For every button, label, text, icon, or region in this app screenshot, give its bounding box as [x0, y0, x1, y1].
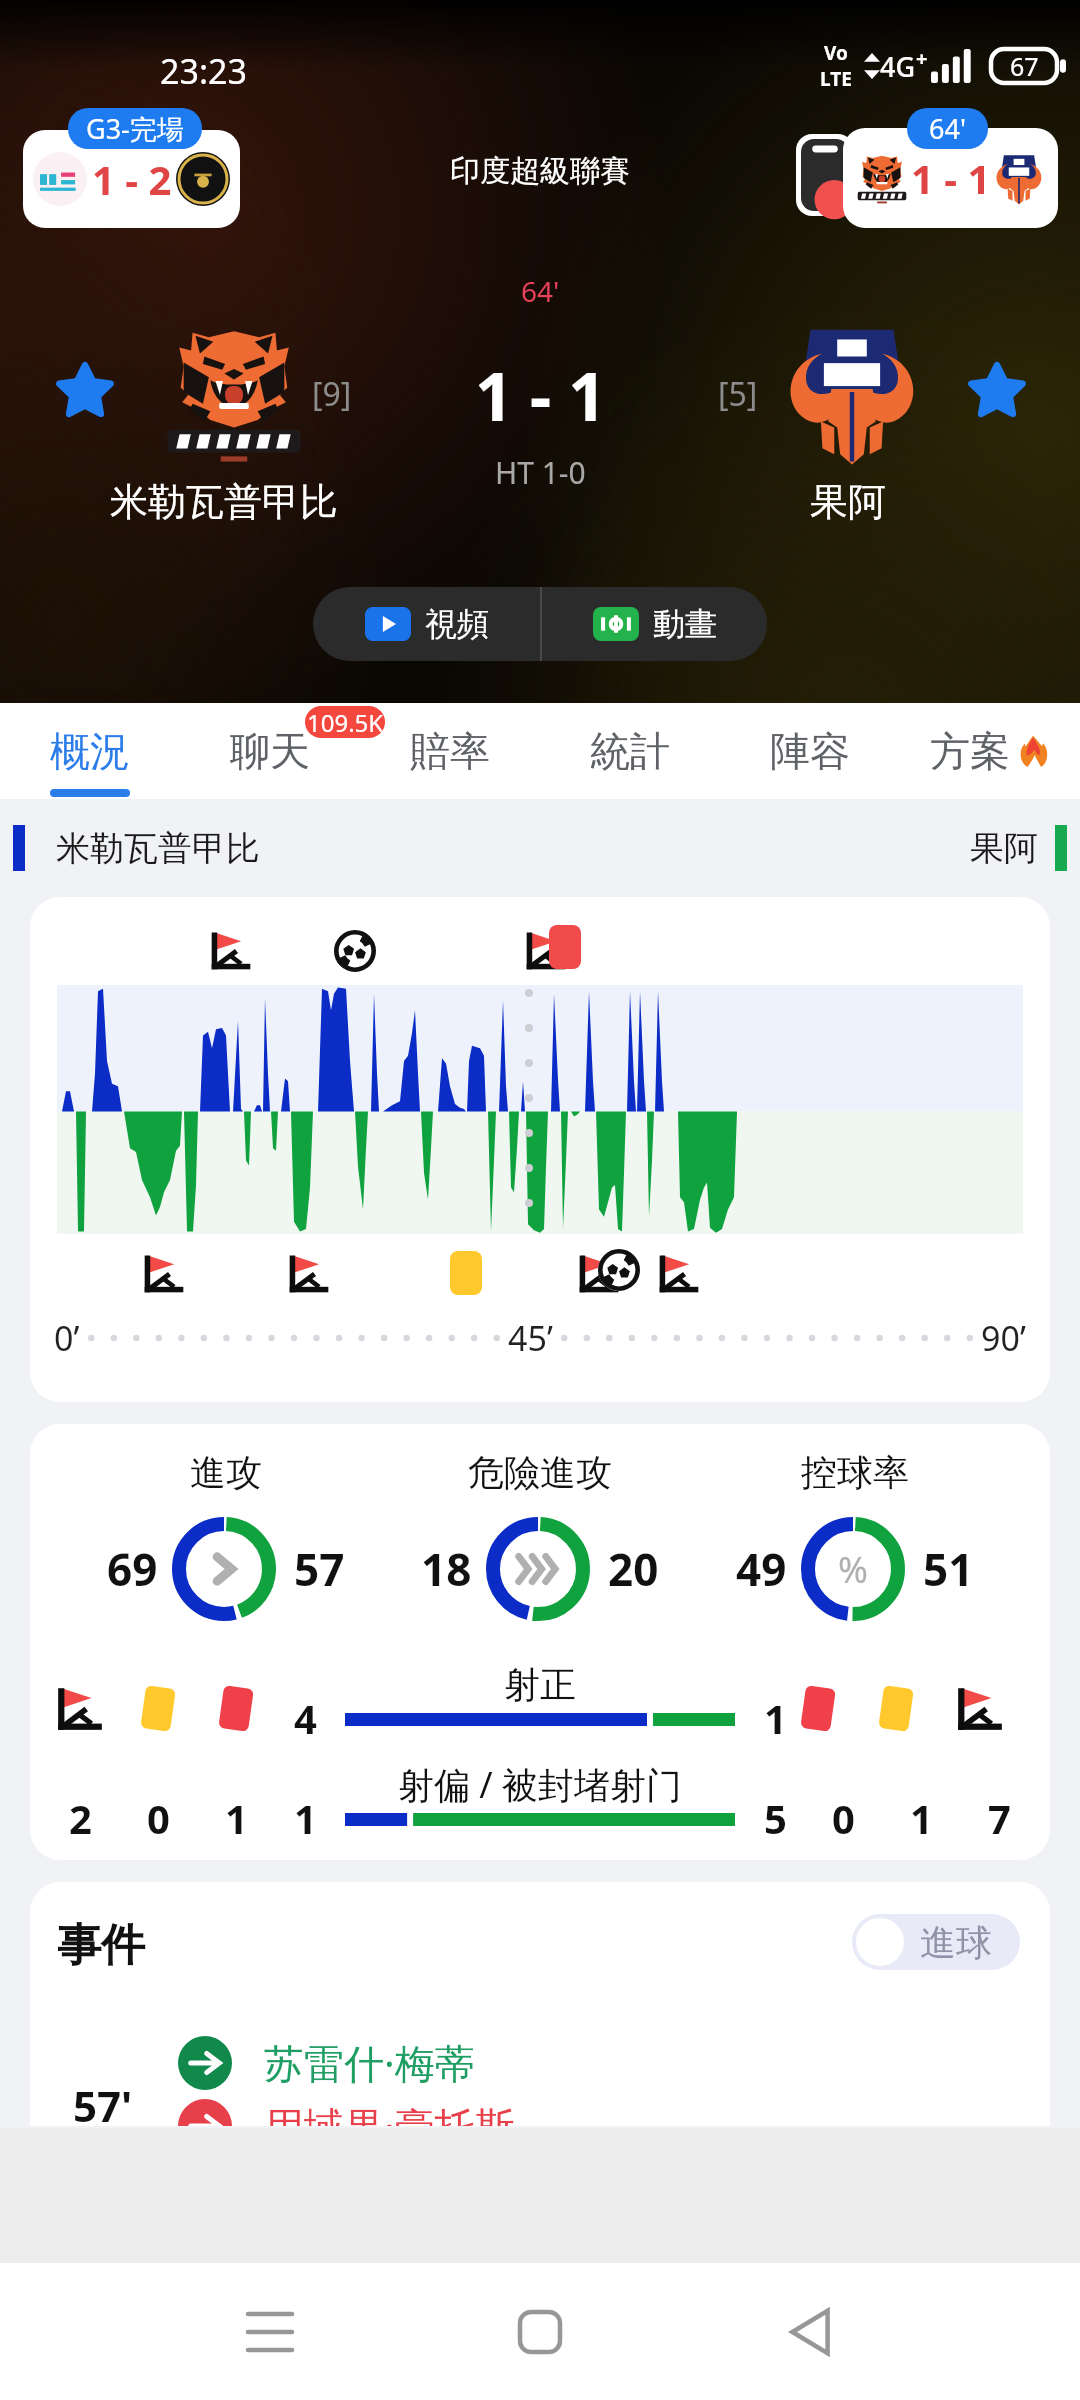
button[interactable]: Home — [450, 2263, 630, 2400]
button[interactable]: 進球 — [856, 1918, 1016, 1966]
staticText: 64' — [521, 272, 560, 310]
staticText: 苏雷什·梅蒂 — [264, 2035, 475, 2090]
staticText: 1 — [764, 1691, 787, 1745]
staticText: 51 — [923, 1539, 974, 1599]
staticText: 射正 — [504, 1662, 576, 1707]
button[interactable]: 動畫 — [542, 587, 767, 661]
staticText: 69 — [107, 1539, 158, 1599]
staticText: 1 - 1 — [475, 350, 606, 440]
button[interactable]: 概況 — [0, 703, 180, 799]
staticText: 90’ — [981, 1315, 1026, 1361]
staticText: 1 — [910, 1791, 933, 1845]
staticText: 危險進攻 — [468, 1450, 612, 1495]
staticText: 7 — [988, 1791, 1011, 1845]
button[interactable]: 聊天 — [180, 703, 360, 799]
staticText: 49 — [736, 1539, 787, 1599]
staticText: 1 — [294, 1791, 317, 1845]
staticText: 57' — [73, 2077, 133, 2126]
button[interactable]: 陣容 — [720, 703, 900, 799]
button[interactable]: Favourite home team — [58, 364, 112, 418]
staticText: 1 — [225, 1791, 248, 1845]
staticText: 用域果·豪托斯 — [264, 2098, 515, 2126]
staticText: 64' — [929, 110, 966, 147]
staticText: G3-完場 — [86, 110, 184, 147]
staticText: 賠率 — [410, 726, 490, 776]
staticText: 1 - 2 — [92, 152, 172, 206]
staticText: 米勒瓦普甲比 — [110, 478, 338, 526]
staticText: 1 - 1 — [911, 151, 991, 205]
staticText: 進球 — [920, 1920, 992, 1965]
button[interactable]: 1 - 1 — [843, 128, 1058, 228]
button[interactable]: 1 - 2 — [23, 108, 240, 228]
staticText: 57 — [294, 1539, 345, 1599]
staticText: [5] — [718, 372, 758, 416]
button[interactable]: Back — [720, 2263, 900, 2400]
staticText: 4G — [880, 48, 916, 85]
staticText: 印度超級聯賽 — [450, 152, 630, 190]
staticText: 概況 — [50, 726, 130, 776]
staticText: 視頻 — [425, 604, 489, 644]
staticText: 4 — [294, 1691, 317, 1745]
button[interactable]: 方案 — [900, 703, 1080, 799]
button[interactable]: 視頻 — [313, 587, 540, 661]
staticText: 45’ — [508, 1315, 553, 1361]
button[interactable]: 賠率 — [360, 703, 540, 799]
staticText: 聊天 — [230, 726, 310, 776]
staticText: 20 — [608, 1539, 659, 1599]
staticText: 5 — [764, 1791, 787, 1845]
staticText: 陣容 — [770, 726, 850, 776]
staticText: + — [916, 45, 928, 72]
staticText: 動畫 — [653, 604, 717, 644]
staticText: 控球率 — [801, 1450, 909, 1495]
staticText: 射偏 / 被封堵射门 — [398, 1760, 683, 1809]
staticText: LTE — [820, 66, 852, 92]
staticText: 統計 — [590, 726, 670, 776]
staticText: Vo — [824, 40, 848, 66]
button[interactable]: 0’ — [30, 897, 1050, 1402]
staticText: 2 — [69, 1791, 92, 1845]
staticText: 0 — [832, 1791, 855, 1845]
staticText: 米勒瓦普甲比 — [56, 827, 260, 870]
staticText: 果阿 — [810, 478, 886, 526]
staticText: 0’ — [54, 1315, 80, 1361]
staticText: [9] — [312, 372, 352, 416]
staticText: 方案 — [930, 726, 1010, 776]
staticText: % — [838, 1545, 868, 1594]
staticText: 0 — [147, 1791, 170, 1845]
button[interactable]: Favourite away team — [970, 364, 1024, 418]
staticText: 23:23 — [160, 48, 247, 94]
staticText: 109.5K — [307, 706, 384, 738]
staticText: HT 1-0 — [495, 452, 586, 493]
staticText: 果阿 — [970, 827, 1038, 870]
button[interactable]: 進攻 — [30, 1424, 1050, 1860]
staticText: 67 — [1010, 49, 1039, 83]
staticText: 進攻 — [190, 1450, 262, 1495]
staticText: 18 — [421, 1539, 472, 1599]
button[interactable]: 統計 — [540, 703, 720, 799]
staticText: 事件 — [57, 1918, 145, 1973]
button[interactable]: Recent apps — [180, 2263, 360, 2400]
